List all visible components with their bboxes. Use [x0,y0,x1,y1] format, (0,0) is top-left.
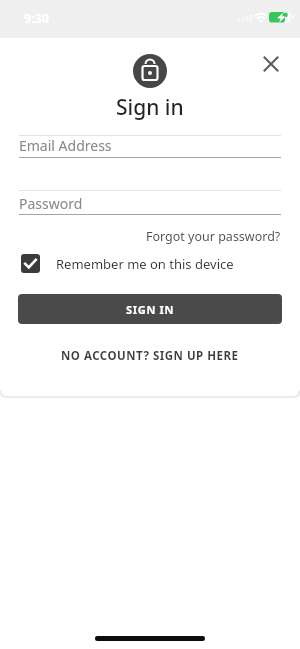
staticText: Email Address [19,136,112,155]
button[interactable]: Forgot your password? [146,228,281,245]
button[interactable]: Remember me on this device [21,251,234,273]
button[interactable] [253,46,289,82]
staticText: SIGN IN [126,302,175,317]
button[interactable]: SIGN IN [18,294,282,324]
button[interactable]: NO ACCOUNT? SIGN UP HERE [53,346,247,366]
staticText: 9:30 [24,10,49,27]
staticText: Sign in [116,93,184,122]
staticText: NO ACCOUNT? SIGN UP HERE [61,348,239,364]
staticText: Remember me on this device [56,255,234,273]
staticText: Password [19,194,83,213]
staticText: Forgot your password? [146,228,281,245]
